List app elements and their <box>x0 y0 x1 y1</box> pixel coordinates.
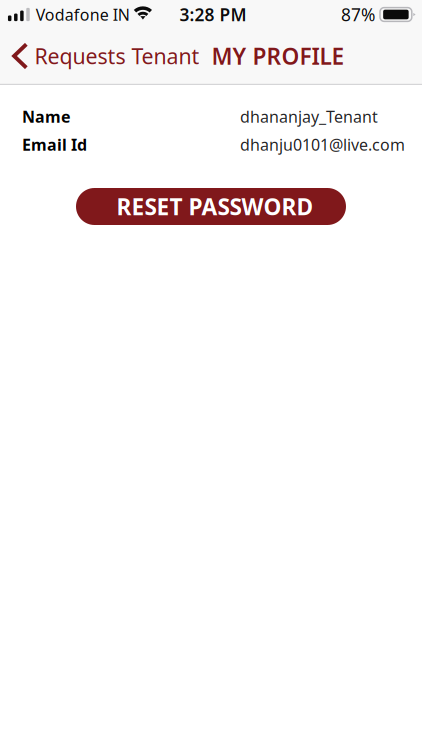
staticText: RESET PASSWORD <box>116 191 313 221</box>
staticText: Requests Tenant <box>34 42 199 70</box>
staticText: Name <box>22 106 71 127</box>
staticText: dhanju0101@live.com <box>240 134 405 155</box>
button[interactable]: RESET PASSWORD <box>76 188 346 225</box>
staticText: dhananjay_Tenant <box>240 106 378 127</box>
staticText: 87% <box>341 3 375 26</box>
staticText: MY PROFILE <box>211 41 344 71</box>
staticText: 3:28 PM <box>179 3 246 26</box>
button[interactable]: Back to Requests Tenant <box>0 28 201 84</box>
staticText: Email Id <box>22 134 87 155</box>
staticText: Vodafone IN <box>36 4 130 25</box>
